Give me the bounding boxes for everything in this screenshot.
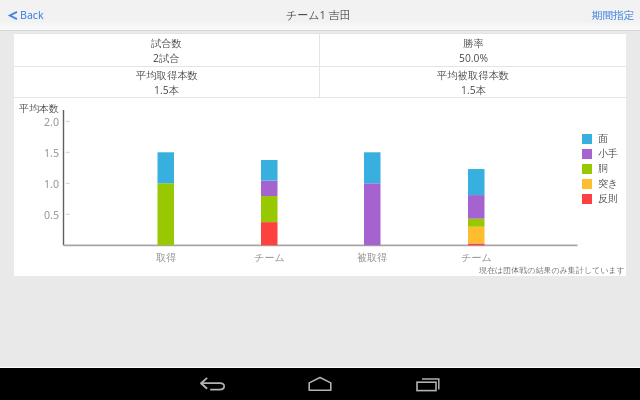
staticText: Back [20, 8, 44, 22]
staticText: 被取得 [357, 251, 387, 264]
button[interactable]: Back [195, 369, 227, 399]
staticText: チーム [461, 251, 492, 264]
staticText: 平均本数 [19, 102, 59, 115]
button[interactable]: Recent apps [411, 369, 443, 399]
staticText: チーム1 吉田 [286, 7, 351, 22]
staticText: 1.5本 [154, 83, 179, 97]
staticText: 突き [598, 177, 619, 190]
staticText: 胴 [598, 162, 608, 175]
staticText: 期間指定 [592, 9, 634, 22]
staticText: 勝率 [463, 37, 484, 50]
staticText: 0.5 [43, 208, 59, 223]
button[interactable]: 期間指定 [585, 5, 640, 26]
button[interactable]: 突き [582, 176, 619, 191]
button[interactable]: 胴 [582, 161, 608, 176]
button[interactable]: 反則 [582, 191, 618, 206]
staticText: 1.0 [43, 177, 59, 192]
staticText: チーム [254, 251, 285, 264]
staticText: 平均被取得本数 [437, 69, 510, 82]
staticText: 取得 [156, 251, 176, 264]
staticText: 面 [598, 132, 608, 145]
staticText: 小手 [598, 147, 618, 160]
staticText: 2試合 [153, 51, 180, 65]
staticText: 現在は団体戦の結果のみ集計しています [479, 265, 625, 275]
staticText: 平均取得本数 [136, 69, 198, 82]
staticText: 50.0% [459, 51, 488, 65]
button[interactable]: Home [304, 369, 336, 399]
staticText: 2.0 [43, 115, 59, 130]
button[interactable]: 平均被取得本数 [320, 67, 626, 97]
button[interactable]: 平均取得本数 [14, 67, 319, 97]
staticText: 1.5 [43, 146, 59, 161]
staticText: 1.5本 [461, 83, 486, 97]
button[interactable]: 面 [582, 131, 608, 146]
staticText: 試合数 [151, 37, 182, 50]
button[interactable]: 小手 [582, 146, 618, 161]
button[interactable]: Back [0, 4, 52, 26]
staticText: 反則 [598, 192, 618, 205]
button[interactable]: 試合数 [14, 34, 319, 66]
button[interactable]: 勝率 [320, 34, 626, 66]
